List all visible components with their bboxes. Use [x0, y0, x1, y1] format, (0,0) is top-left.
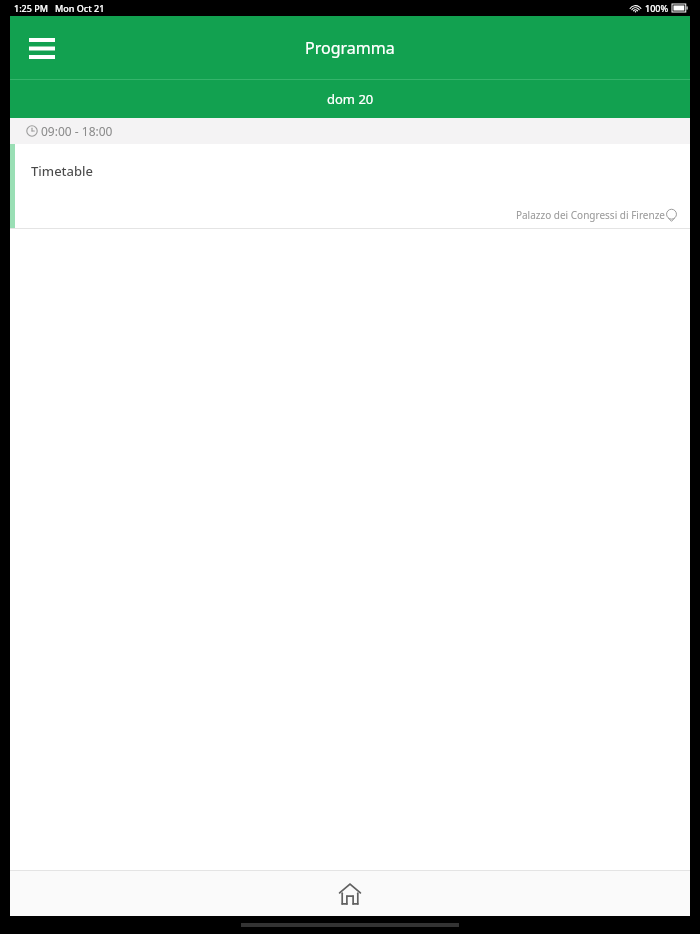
button[interactable]: Timetable: [10, 144, 690, 228]
button[interactable]: Open navigation menu: [22, 28, 62, 68]
staticText: 1:25 PM: [14, 2, 48, 14]
staticText: Programma: [305, 37, 395, 59]
staticText: Mon Oct 21: [55, 2, 105, 14]
staticText: 09:00 - 18:00: [41, 123, 113, 139]
staticText: Timetable: [31, 162, 94, 180]
staticText: 100%: [645, 2, 669, 14]
button[interactable]: dom 20: [10, 80, 690, 118]
staticText: Palazzo dei Congressi di Firenze: [515, 208, 665, 222]
button[interactable]: Home: [326, 871, 374, 916]
staticText: dom 20: [327, 90, 374, 108]
